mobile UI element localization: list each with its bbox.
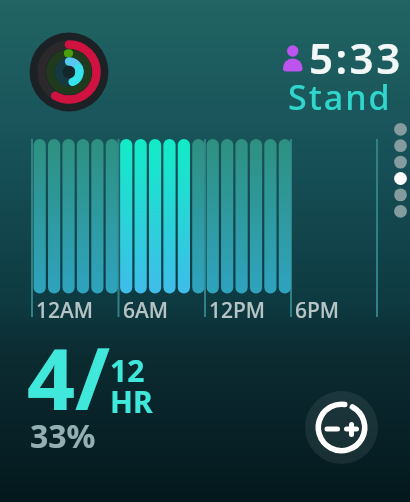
staticText: 33% bbox=[30, 414, 96, 458]
staticText: 12AM bbox=[36, 296, 94, 325]
staticText: 6AM bbox=[123, 296, 169, 325]
staticText: 12 bbox=[110, 350, 145, 391]
staticText: HR bbox=[110, 381, 153, 422]
staticText: 4/ bbox=[27, 320, 110, 434]
button[interactable] bbox=[305, 390, 381, 466]
staticText: 6PM bbox=[295, 296, 340, 325]
staticText: 12PM bbox=[209, 296, 266, 325]
staticText: 5:33 bbox=[309, 29, 403, 86]
button[interactable] bbox=[29, 32, 109, 112]
staticText: Stand bbox=[288, 74, 392, 120]
